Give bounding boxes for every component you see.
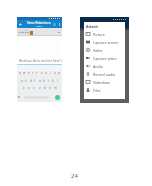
- staticText: Steve Robertson: [27, 21, 51, 25]
- staticText: v: [39, 86, 41, 89]
- staticText: e: [28, 71, 30, 74]
- staticText: z: [23, 86, 25, 89]
- staticText: i: [50, 71, 51, 74]
- staticText: c: [33, 86, 35, 89]
- button[interactable]: Steve Robertson: [17, 28, 62, 35]
- button[interactable]: o: [53, 71, 57, 74]
- staticText: x: [28, 86, 30, 89]
- staticText: 24: [71, 172, 78, 180]
- staticText: f: [34, 79, 36, 82]
- button[interactable]: c: [32, 86, 36, 89]
- button[interactable]: q: [18, 71, 22, 74]
- button[interactable]: a: [20, 79, 24, 82]
- staticText: Attach: [86, 24, 98, 29]
- staticText: j: [48, 79, 49, 82]
- button[interactable]: Slideshow: [84, 78, 125, 86]
- button[interactable]: Send message: [55, 95, 60, 100]
- staticText: Video: [93, 48, 103, 53]
- staticText: a: [21, 79, 23, 82]
- button[interactable]: Picture: [84, 30, 125, 38]
- staticText: Record audio: [93, 72, 116, 77]
- button[interactable]: f: [33, 79, 37, 82]
- button[interactable]: j: [46, 79, 50, 82]
- button[interactable]: i: [48, 71, 52, 74]
- staticText: k: [52, 79, 54, 82]
- button[interactable]: t: [35, 71, 39, 74]
- staticText: Audio: [93, 64, 103, 69]
- button[interactable]: p: [57, 71, 61, 74]
- button[interactable]: Audio: [84, 62, 125, 70]
- button[interactable]: g: [38, 79, 42, 82]
- staticText: u: [45, 71, 47, 74]
- button[interactable]: Capture video: [84, 54, 125, 62]
- button[interactable]: k: [51, 79, 55, 82]
- button[interactable]: Add recipient: [57, 30, 61, 34]
- staticText: Slideshow: [93, 80, 110, 85]
- button[interactable]: b: [43, 86, 47, 89]
- button[interactable]: Call: [52, 22, 56, 26]
- button[interactable]: Files: [84, 86, 125, 94]
- staticText: online: [36, 25, 43, 28]
- staticText: s: [25, 79, 27, 82]
- staticText: b: [44, 86, 46, 89]
- button[interactable]: z: [22, 86, 26, 89]
- button[interactable]: n: [48, 86, 52, 89]
- button[interactable]: d: [29, 79, 33, 82]
- button[interactable]: l: [55, 79, 59, 82]
- button[interactable]: s: [24, 79, 28, 82]
- button[interactable]: Back: [18, 22, 22, 26]
- button[interactable]: y: [40, 71, 44, 74]
- button[interactable]: More options: [58, 23, 61, 26]
- staticText: d: [30, 79, 32, 82]
- staticText: n: [49, 86, 51, 89]
- staticText: y: [41, 71, 43, 74]
- button[interactable]: u: [44, 71, 48, 74]
- button[interactable]: h: [42, 79, 46, 82]
- button[interactable]: r: [31, 71, 35, 74]
- staticText: t: [36, 71, 38, 74]
- button[interactable]: m: [53, 86, 57, 89]
- button[interactable]: e: [27, 71, 31, 74]
- staticText: h: [43, 79, 45, 82]
- button[interactable]: x: [27, 86, 31, 89]
- staticText: Files: [93, 88, 101, 93]
- staticText: Capture video: [93, 56, 117, 61]
- staticText: Picture: [93, 32, 105, 37]
- button[interactable]: Video: [84, 46, 125, 54]
- button[interactable]: Send: [61, 58, 62, 63]
- button[interactable]: v: [38, 86, 42, 89]
- staticText: p: [58, 71, 60, 74]
- staticText: q: [19, 71, 21, 74]
- staticText: Would you like to send it to Steve?: [19, 59, 61, 63]
- staticText: m: [54, 86, 57, 89]
- staticText: w: [23, 71, 26, 74]
- staticText: Steve Robertson: [18, 30, 30, 33]
- staticText: Capture screen: [93, 40, 119, 45]
- staticText: r: [32, 71, 34, 74]
- staticText: g: [39, 79, 41, 82]
- button[interactable]: w: [22, 71, 26, 74]
- button[interactable]: Record audio: [84, 70, 125, 78]
- staticText: o: [54, 71, 56, 74]
- button[interactable]: Capture screen: [84, 38, 125, 46]
